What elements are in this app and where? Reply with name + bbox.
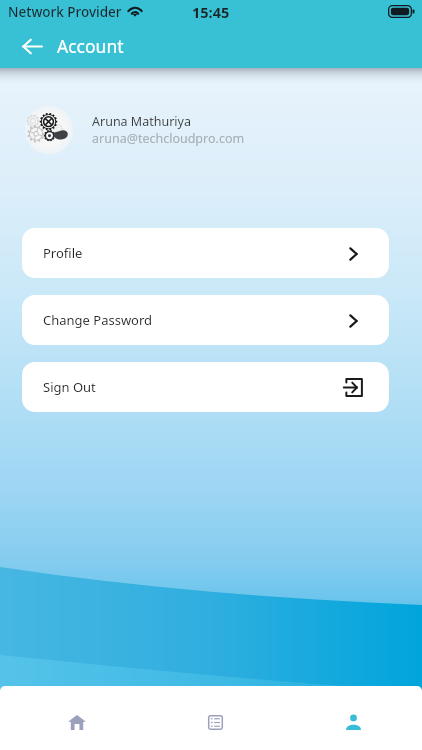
button[interactable]: Home [8,694,146,750]
staticText: Sign Out [43,378,96,396]
button[interactable]: Profile [22,228,389,278]
staticText: aruna@techcloudpro.com [92,130,245,147]
button[interactable]: Change Password [22,295,389,345]
staticText: Network Provider [8,3,122,21]
staticText: Account [57,34,124,58]
staticText: Aruna Mathuriya [92,113,191,130]
staticText: Profile [43,244,83,262]
button[interactable]: Orders [146,694,284,750]
staticText: 15:45 [192,2,230,22]
button[interactable]: Back [10,24,54,68]
button[interactable]: Sign Out [22,362,389,412]
button[interactable]: Account [284,694,422,750]
staticText: Change Password [43,311,153,329]
